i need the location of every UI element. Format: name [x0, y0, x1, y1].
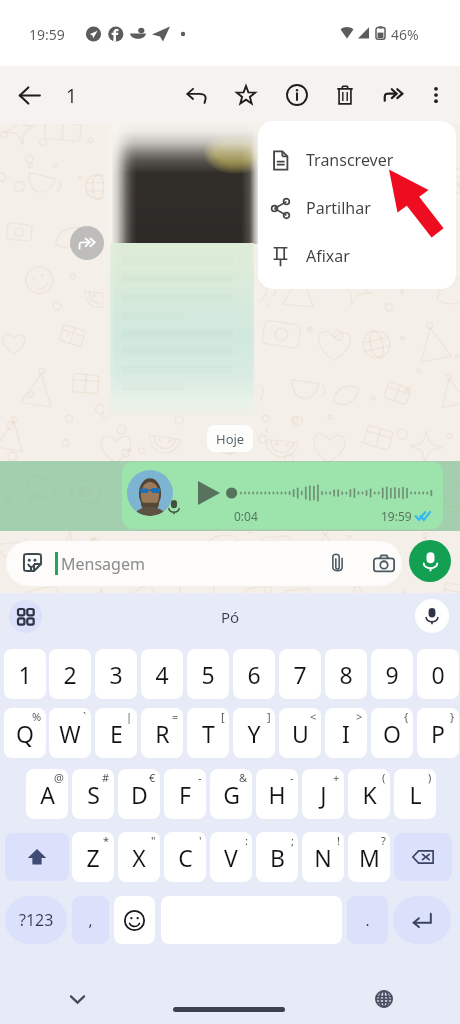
- staticText: :: [245, 833, 248, 848]
- staticText: (: [382, 770, 386, 785]
- button[interactable]: 6: [233, 649, 275, 699]
- button[interactable]: Voice input: [415, 599, 449, 633]
- button[interactable]: Hide keyboard: [60, 982, 94, 1016]
- staticText: V: [224, 842, 238, 873]
- button[interactable]: More options: [419, 78, 453, 112]
- staticText: 19:59: [29, 25, 65, 44]
- staticText: 0:04: [234, 508, 258, 524]
- staticText: J: [320, 779, 327, 810]
- button[interactable]: Change language: [367, 982, 401, 1016]
- button[interactable]: Shift: [5, 833, 69, 881]
- button[interactable]: 3: [95, 649, 137, 699]
- button[interactable]: W: [49, 708, 91, 758]
- button[interactable]: A: [26, 769, 68, 819]
- button[interactable]: M: [348, 832, 390, 882]
- button[interactable]: R: [141, 708, 183, 758]
- button[interactable]: Info: [280, 78, 314, 112]
- staticText: E: [110, 718, 123, 749]
- staticText: Hoje: [216, 430, 245, 448]
- staticText: 0: [431, 659, 445, 690]
- button[interactable]: X: [118, 832, 160, 882]
- button[interactable]: Toolbar: [9, 600, 42, 633]
- button[interactable]: Forward: [377, 78, 411, 112]
- button[interactable]: N: [302, 832, 344, 882]
- button[interactable]: Record voice message: [409, 540, 451, 582]
- staticText: [: [221, 709, 225, 724]
- button[interactable]: 2: [49, 649, 91, 699]
- button[interactable]: G: [210, 769, 252, 819]
- button[interactable]: Afixar: [258, 234, 456, 278]
- staticText: 8: [339, 659, 353, 690]
- button[interactable]: Star: [229, 78, 263, 112]
- staticText: S: [87, 779, 100, 810]
- button[interactable]: 8: [325, 649, 367, 699]
- staticText: Afixar: [306, 245, 350, 267]
- button[interactable]: Partilhar: [258, 186, 456, 230]
- button[interactable]: Back: [10, 76, 48, 114]
- button[interactable]: C: [164, 832, 206, 882]
- button[interactable]: B: [256, 832, 298, 882]
- button[interactable]: Q: [4, 708, 46, 758]
- button[interactable]: O: [371, 708, 413, 758]
- staticText: ,: [88, 910, 93, 930]
- staticText: X: [132, 842, 146, 873]
- button[interactable]: Delete: [328, 78, 362, 112]
- staticText: €: [149, 770, 156, 785]
- button[interactable]: Mensagem: [6, 541, 402, 586]
- staticText: T: [202, 718, 215, 749]
- button[interactable]: 0:04: [0, 461, 460, 531]
- button[interactable]: F: [164, 769, 206, 819]
- staticText: -: [198, 770, 202, 785]
- button[interactable]: .: [347, 896, 388, 944]
- staticText: ;: [291, 833, 294, 848]
- button[interactable]: D: [118, 769, 160, 819]
- staticText: Z: [86, 842, 100, 873]
- button[interactable]: E: [95, 708, 137, 758]
- button[interactable]: Emoji: [114, 896, 155, 944]
- staticText: =: [172, 709, 179, 724]
- button[interactable]: Z: [72, 832, 114, 882]
- staticText: L: [409, 779, 422, 810]
- button[interactable]: K: [348, 769, 390, 819]
- staticText: Mensagem: [61, 553, 145, 575]
- button[interactable]: Backspace: [394, 833, 452, 881]
- staticText: M: [359, 842, 380, 873]
- button[interactable]: H: [256, 769, 298, 819]
- staticText: 1: [66, 83, 77, 109]
- staticText: {: [404, 709, 409, 724]
- button[interactable]: 1: [4, 649, 46, 699]
- button[interactable]: P: [417, 708, 459, 758]
- staticText: 4: [155, 659, 169, 690]
- button[interactable]: 5: [187, 649, 229, 699]
- staticText: `: [83, 709, 87, 724]
- button[interactable]: J: [302, 769, 344, 819]
- button[interactable]: Reply: [180, 78, 214, 112]
- staticText: Q: [16, 718, 34, 749]
- staticText: Partilhar: [306, 197, 371, 219]
- staticText: ]: [267, 709, 271, 724]
- button[interactable]: ,: [72, 896, 109, 944]
- button[interactable]: L: [394, 769, 436, 819]
- button[interactable]: 9: [371, 649, 413, 699]
- staticText: }: [450, 709, 455, 724]
- button[interactable]: 4: [141, 649, 183, 699]
- button[interactable]: I: [325, 708, 367, 758]
- button[interactable]: ?123: [5, 896, 67, 944]
- button[interactable]: U: [279, 708, 321, 758]
- button[interactable]: 7: [279, 649, 321, 699]
- staticText: P: [431, 718, 445, 749]
- button[interactable]: V: [210, 832, 252, 882]
- staticText: 3: [109, 659, 123, 690]
- staticText: Pó: [221, 607, 240, 627]
- button[interactable]: Y: [233, 708, 275, 758]
- staticText: -: [290, 770, 294, 785]
- staticText: 5: [201, 659, 215, 690]
- button[interactable]: Transcrever: [258, 138, 456, 182]
- button[interactable]: Forwarded: [70, 226, 104, 260]
- staticText: !: [337, 833, 340, 848]
- button[interactable]: Enter: [393, 896, 451, 944]
- button[interactable]: T: [187, 708, 229, 758]
- button[interactable]: 0: [417, 649, 459, 699]
- button[interactable]: S: [72, 769, 114, 819]
